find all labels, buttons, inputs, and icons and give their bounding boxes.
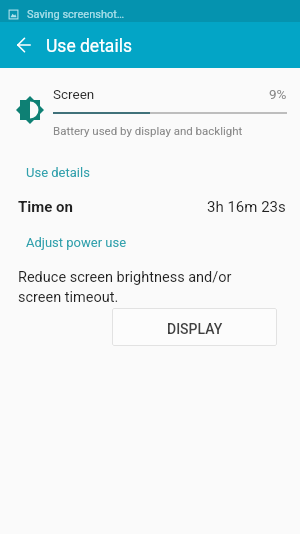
staticText: Battery used by display and backlight: [53, 124, 243, 137]
staticText: Saving screenshot…: [27, 8, 125, 21]
staticText: Use details: [26, 165, 90, 180]
button[interactable]: DISPLAY: [112, 308, 277, 346]
button[interactable]: Use details: [0, 164, 300, 181]
staticText: 9%: [269, 86, 287, 102]
button[interactable]: Back: [0, 22, 47, 68]
staticText: DISPLAY: [167, 321, 223, 337]
staticText: Use details: [46, 36, 132, 57]
staticText: 3h 16m 23s: [207, 198, 286, 216]
button[interactable]: Adjust power use: [0, 234, 300, 251]
staticText: Screen: [53, 86, 95, 102]
staticText: Reduce screen brightness and/or screen t…: [18, 269, 232, 306]
staticText: Time on: [18, 198, 73, 216]
staticText: Adjust power use: [26, 235, 127, 250]
